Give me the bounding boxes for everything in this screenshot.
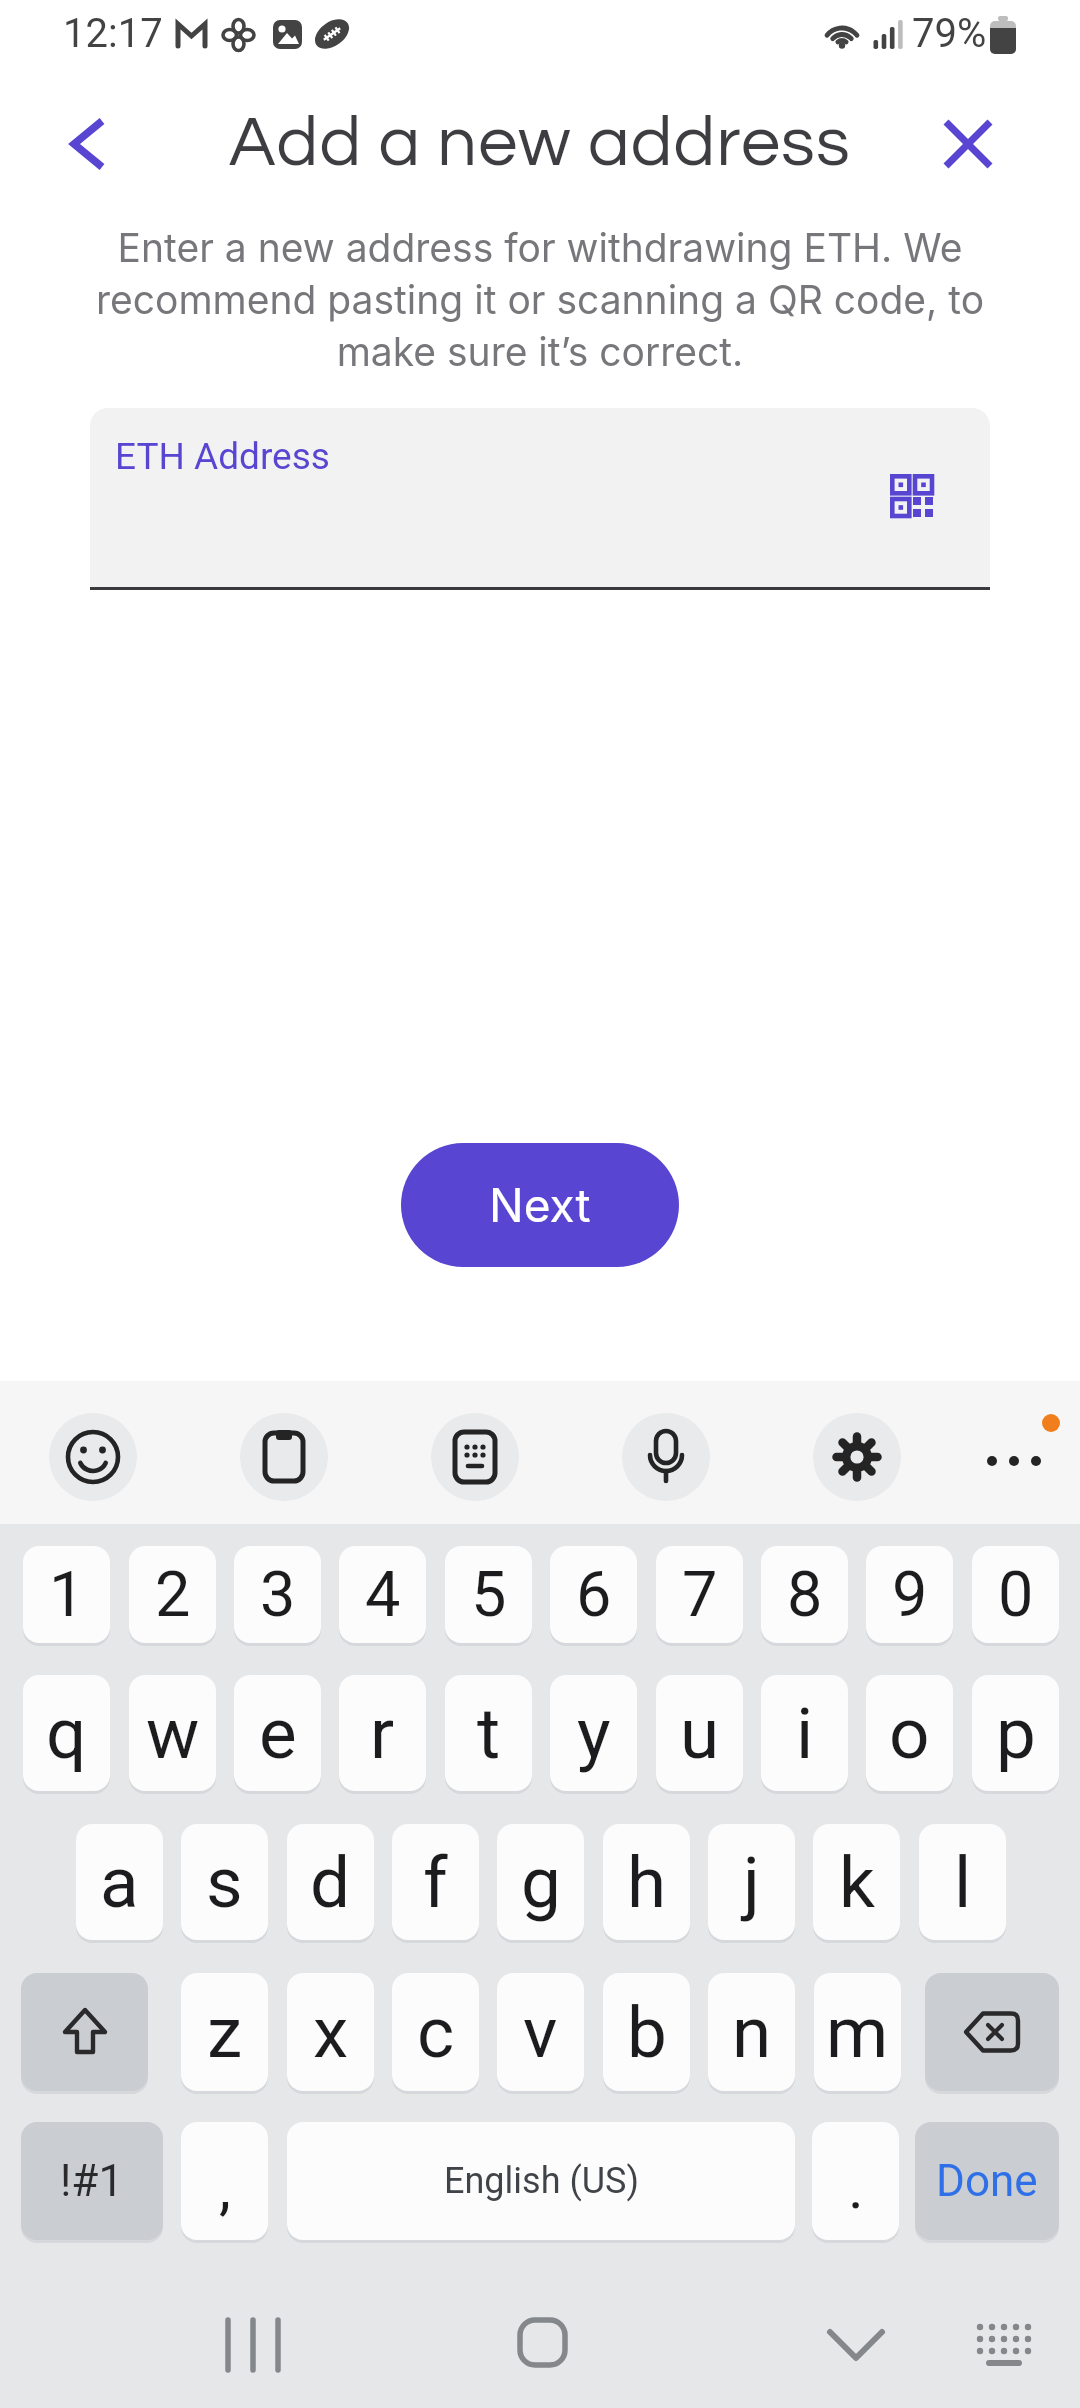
staticText: z xyxy=(207,1991,243,2074)
button[interactable]: x xyxy=(287,1973,374,2091)
button[interactable]: 9 xyxy=(866,1546,953,1643)
button[interactable]: , xyxy=(181,2122,268,2240)
staticText: c xyxy=(417,1991,455,2074)
button[interactable]: v xyxy=(497,1973,584,2091)
staticText: l xyxy=(954,1841,972,1924)
button[interactable]: English (US) xyxy=(287,2122,795,2240)
staticText: . xyxy=(848,2152,864,2222)
staticText: 6 xyxy=(576,1558,612,1632)
button[interactable] xyxy=(936,112,1000,176)
button[interactable]: o xyxy=(866,1675,953,1791)
staticText: k xyxy=(839,1841,875,1924)
button[interactable]: c xyxy=(392,1973,479,2091)
staticText: Add a new address xyxy=(0,108,1080,204)
button[interactable] xyxy=(21,1973,148,2091)
button[interactable] xyxy=(56,112,120,176)
staticText: Enter a new address for withdrawing ETH.… xyxy=(0,224,1080,394)
button[interactable]: z xyxy=(181,1973,268,2091)
button[interactable]: y xyxy=(550,1675,637,1791)
button[interactable]: w xyxy=(129,1675,216,1791)
staticText: v xyxy=(523,1991,558,2074)
staticText: 7 xyxy=(682,1558,718,1632)
button[interactable]: 4 xyxy=(339,1546,426,1643)
button[interactable]: 5 xyxy=(445,1546,532,1643)
staticText: a xyxy=(100,1841,139,1924)
button[interactable]: n xyxy=(708,1973,795,2091)
button[interactable]: ETH Address xyxy=(90,408,990,590)
button[interactable]: u xyxy=(656,1675,743,1791)
staticText: f xyxy=(423,1841,448,1924)
staticText: 9 xyxy=(892,1558,928,1632)
staticText: 8 xyxy=(787,1558,823,1632)
staticText: b xyxy=(627,1991,667,2074)
button[interactable]: 8 xyxy=(761,1546,848,1643)
staticText: s xyxy=(206,1841,243,1924)
button[interactable]: g xyxy=(497,1824,584,1940)
button[interactable]: f xyxy=(392,1824,479,1940)
button[interactable]: e xyxy=(234,1675,321,1791)
button[interactable]: j xyxy=(708,1824,795,1940)
button[interactable]: k xyxy=(813,1824,900,1940)
button[interactable] xyxy=(49,1413,137,1501)
button[interactable]: 7 xyxy=(656,1546,743,1643)
staticText: x xyxy=(313,1991,349,2074)
staticText: English (US) xyxy=(444,2160,639,2202)
button[interactable]: a xyxy=(76,1824,163,1940)
button[interactable]: !#1 xyxy=(21,2122,163,2240)
staticText: Done xyxy=(936,2155,1038,2207)
button[interactable] xyxy=(508,2310,576,2380)
button[interactable]: Done xyxy=(915,2122,1059,2240)
button[interactable]: Next xyxy=(401,1143,679,1267)
button[interactable] xyxy=(925,1973,1059,2091)
button[interactable]: l xyxy=(919,1824,1006,1940)
button[interactable] xyxy=(820,2310,892,2380)
button[interactable]: . xyxy=(812,2122,899,2240)
staticText: t xyxy=(477,1692,501,1775)
button[interactable] xyxy=(622,1413,710,1501)
staticText: d xyxy=(310,1841,351,1924)
button[interactable]: b xyxy=(603,1973,690,2091)
button[interactable] xyxy=(205,2310,301,2380)
button[interactable]: s xyxy=(181,1824,268,1940)
button[interactable]: h xyxy=(603,1824,690,1940)
staticText: Next xyxy=(489,1177,591,1233)
button[interactable]: t xyxy=(445,1675,532,1791)
button[interactable]: 1 xyxy=(23,1546,110,1643)
button[interactable]: i xyxy=(761,1675,848,1791)
button[interactable] xyxy=(963,2315,1045,2375)
button[interactable]: d xyxy=(287,1824,374,1940)
button[interactable] xyxy=(813,1413,901,1501)
staticText: h xyxy=(627,1841,667,1924)
staticText: o xyxy=(889,1692,930,1775)
staticText: q xyxy=(46,1692,87,1775)
button[interactable] xyxy=(431,1413,519,1501)
staticText: w xyxy=(146,1692,200,1775)
staticText: 1 xyxy=(49,1558,85,1632)
button[interactable] xyxy=(975,1435,1051,1487)
staticText: 12:17 xyxy=(63,10,163,57)
button[interactable]: 3 xyxy=(234,1546,321,1643)
staticText: u xyxy=(680,1692,720,1775)
button[interactable]: 6 xyxy=(550,1546,637,1643)
staticText: e xyxy=(259,1692,297,1775)
staticText: 5 xyxy=(471,1558,507,1632)
button[interactable]: p xyxy=(972,1675,1059,1791)
button[interactable]: 2 xyxy=(129,1546,216,1643)
staticText: y xyxy=(577,1692,611,1775)
staticText: g xyxy=(521,1841,561,1924)
staticText: i xyxy=(796,1692,814,1775)
staticText: r xyxy=(370,1692,395,1775)
staticText: 3 xyxy=(260,1558,296,1632)
staticText: , xyxy=(219,2152,231,2222)
staticText: p xyxy=(996,1692,1036,1775)
staticText: !#1 xyxy=(60,2155,124,2207)
button[interactable]: q xyxy=(23,1675,110,1791)
staticText: 4 xyxy=(365,1558,401,1632)
staticText: 79% xyxy=(912,10,987,57)
button[interactable]: m xyxy=(814,1973,901,2091)
staticText: ETH Address xyxy=(115,435,330,478)
button[interactable]: 0 xyxy=(972,1546,1059,1643)
button[interactable]: r xyxy=(339,1675,426,1791)
button[interactable] xyxy=(240,1413,328,1501)
staticText: n xyxy=(732,1991,772,2074)
